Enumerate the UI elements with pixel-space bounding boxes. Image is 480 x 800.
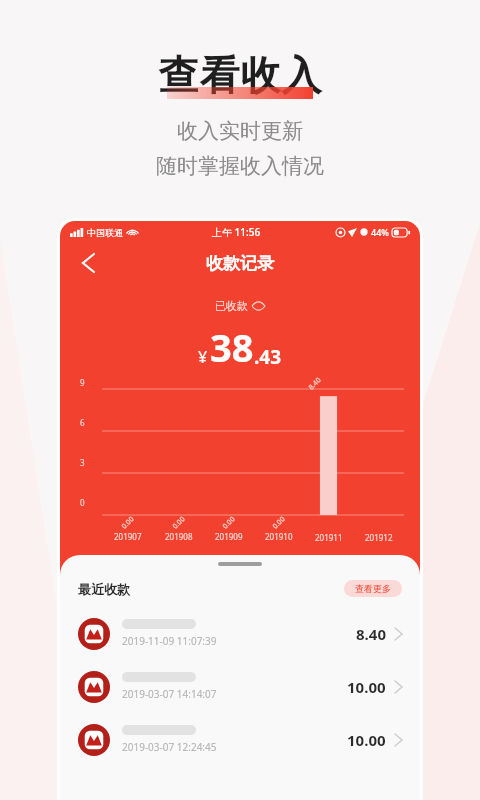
staticText: 38	[210, 321, 254, 373]
staticText: 0.00	[220, 514, 237, 531]
staticText: 3	[80, 457, 85, 468]
staticText: 随时掌握收入情况	[156, 153, 324, 179]
staticText: 201909	[215, 531, 243, 542]
button[interactable]: 查看更多	[344, 580, 402, 597]
staticText: 收款记录	[206, 253, 274, 274]
button[interactable]: 2019-11-09 11:07:39	[60, 607, 420, 660]
staticText: 0.00	[119, 514, 136, 531]
staticText: 2019-03-07 12:24:45	[122, 740, 217, 754]
staticText: 已收款	[215, 299, 248, 313]
button[interactable]: 2019-03-07 14:14:07	[60, 660, 420, 713]
staticText: 查看更多	[355, 583, 391, 594]
staticText: 查看收入	[158, 50, 322, 100]
staticText: 10.00	[347, 677, 386, 697]
staticText: ¥	[198, 346, 208, 368]
staticText: 0.00	[270, 514, 287, 531]
staticText: 201911	[315, 532, 343, 543]
staticText: 9	[80, 377, 85, 388]
staticText: 2019-03-07 14:14:07	[122, 687, 217, 701]
button[interactable]: 已收款	[215, 299, 265, 313]
staticText: 201908	[165, 531, 193, 542]
staticText: 最近收款	[78, 581, 130, 597]
staticText: 8.40	[306, 375, 323, 392]
button[interactable]: Back	[74, 249, 102, 277]
staticText: 201910	[265, 531, 293, 542]
staticText: 8.40	[356, 624, 386, 644]
staticText: 44%	[371, 226, 389, 238]
staticText: 0.00	[170, 514, 187, 531]
staticText: 201907	[114, 531, 142, 542]
staticText: 2019-11-09 11:07:39	[122, 634, 217, 648]
staticText: 6	[80, 417, 85, 428]
staticText: 收入实时更新	[177, 118, 303, 144]
staticText: 10.00	[347, 730, 386, 750]
staticText: 中国联通	[87, 227, 123, 238]
button[interactable]: 2019-03-07 12:24:45	[60, 713, 420, 766]
staticText: 0	[80, 497, 85, 508]
staticText: 上午 11:56	[212, 225, 261, 239]
staticText: .43	[254, 344, 282, 370]
staticText: 201912	[365, 532, 393, 543]
